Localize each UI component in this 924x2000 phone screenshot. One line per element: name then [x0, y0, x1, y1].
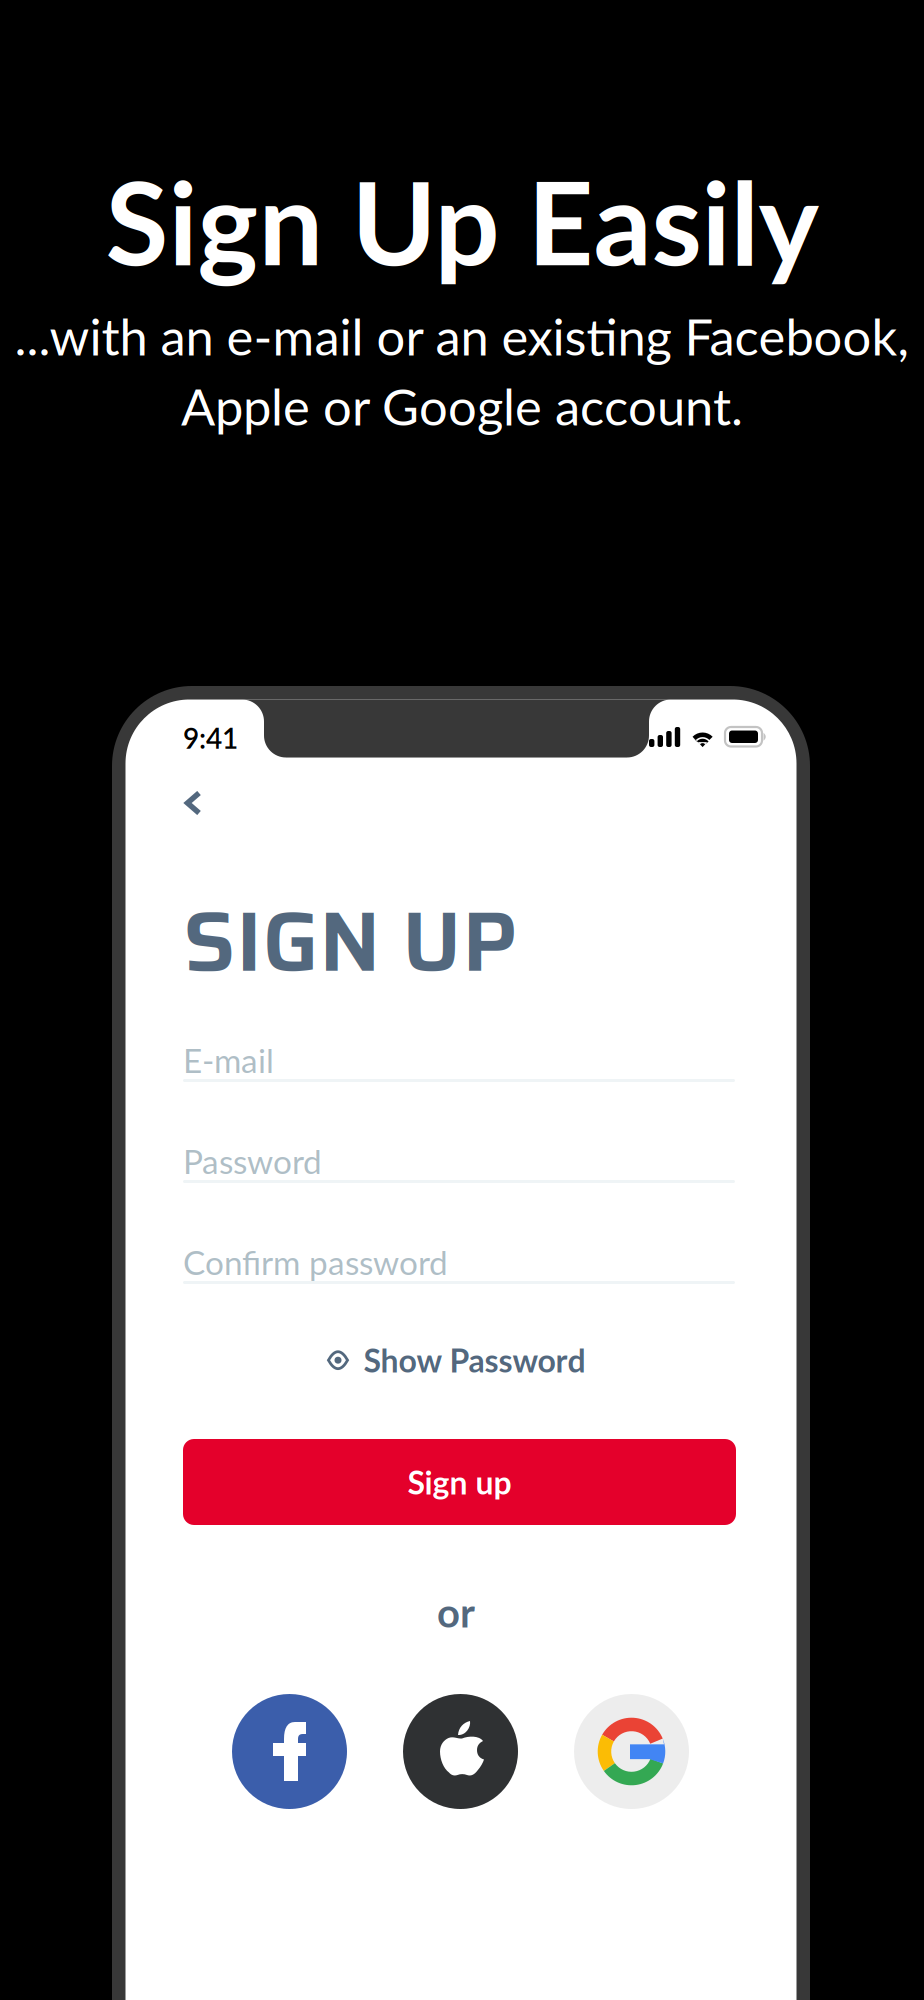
staticText: SIGN UP [183, 874, 517, 1008]
staticText: Password [183, 1141, 322, 1181]
staticText: Sign up [407, 1463, 511, 1501]
button[interactable]: Sign up with Google [574, 1694, 689, 1809]
staticText: Sign Up Easily [105, 152, 818, 290]
button[interactable]: Sign up with Apple [403, 1694, 518, 1809]
staticText: Apple or Google account. [181, 375, 743, 436]
button[interactable]: Show Password [309, 1329, 603, 1391]
button[interactable]: Sign up [183, 1439, 736, 1525]
staticText: 9:41 [183, 721, 238, 755]
staticText: or [437, 1588, 475, 1636]
staticText: Show Password [363, 1341, 585, 1379]
staticText: ...with an e-mail or an existing Faceboo… [14, 306, 909, 366]
button[interactable]: Back [160, 768, 226, 838]
button[interactable]: Sign up with Facebook [232, 1694, 347, 1809]
staticText: E-mail [183, 1040, 274, 1080]
staticText: Confirm password [183, 1242, 448, 1282]
